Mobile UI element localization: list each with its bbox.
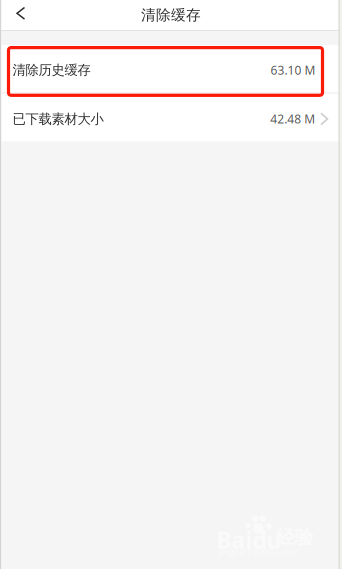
staticText: 已下载素材大小: [12, 111, 103, 127]
staticText: 清除历史缓存: [12, 62, 90, 78]
staticText: 63.10 M: [270, 62, 315, 78]
staticText: 清除缓存: [141, 6, 201, 24]
staticText: 42.48 M: [270, 111, 315, 127]
button[interactable]: 清除历史缓存: [0, 45, 342, 92]
button[interactable]: 已下载素材大小: [0, 94, 342, 141]
button[interactable]: Back: [0, 0, 36, 30]
